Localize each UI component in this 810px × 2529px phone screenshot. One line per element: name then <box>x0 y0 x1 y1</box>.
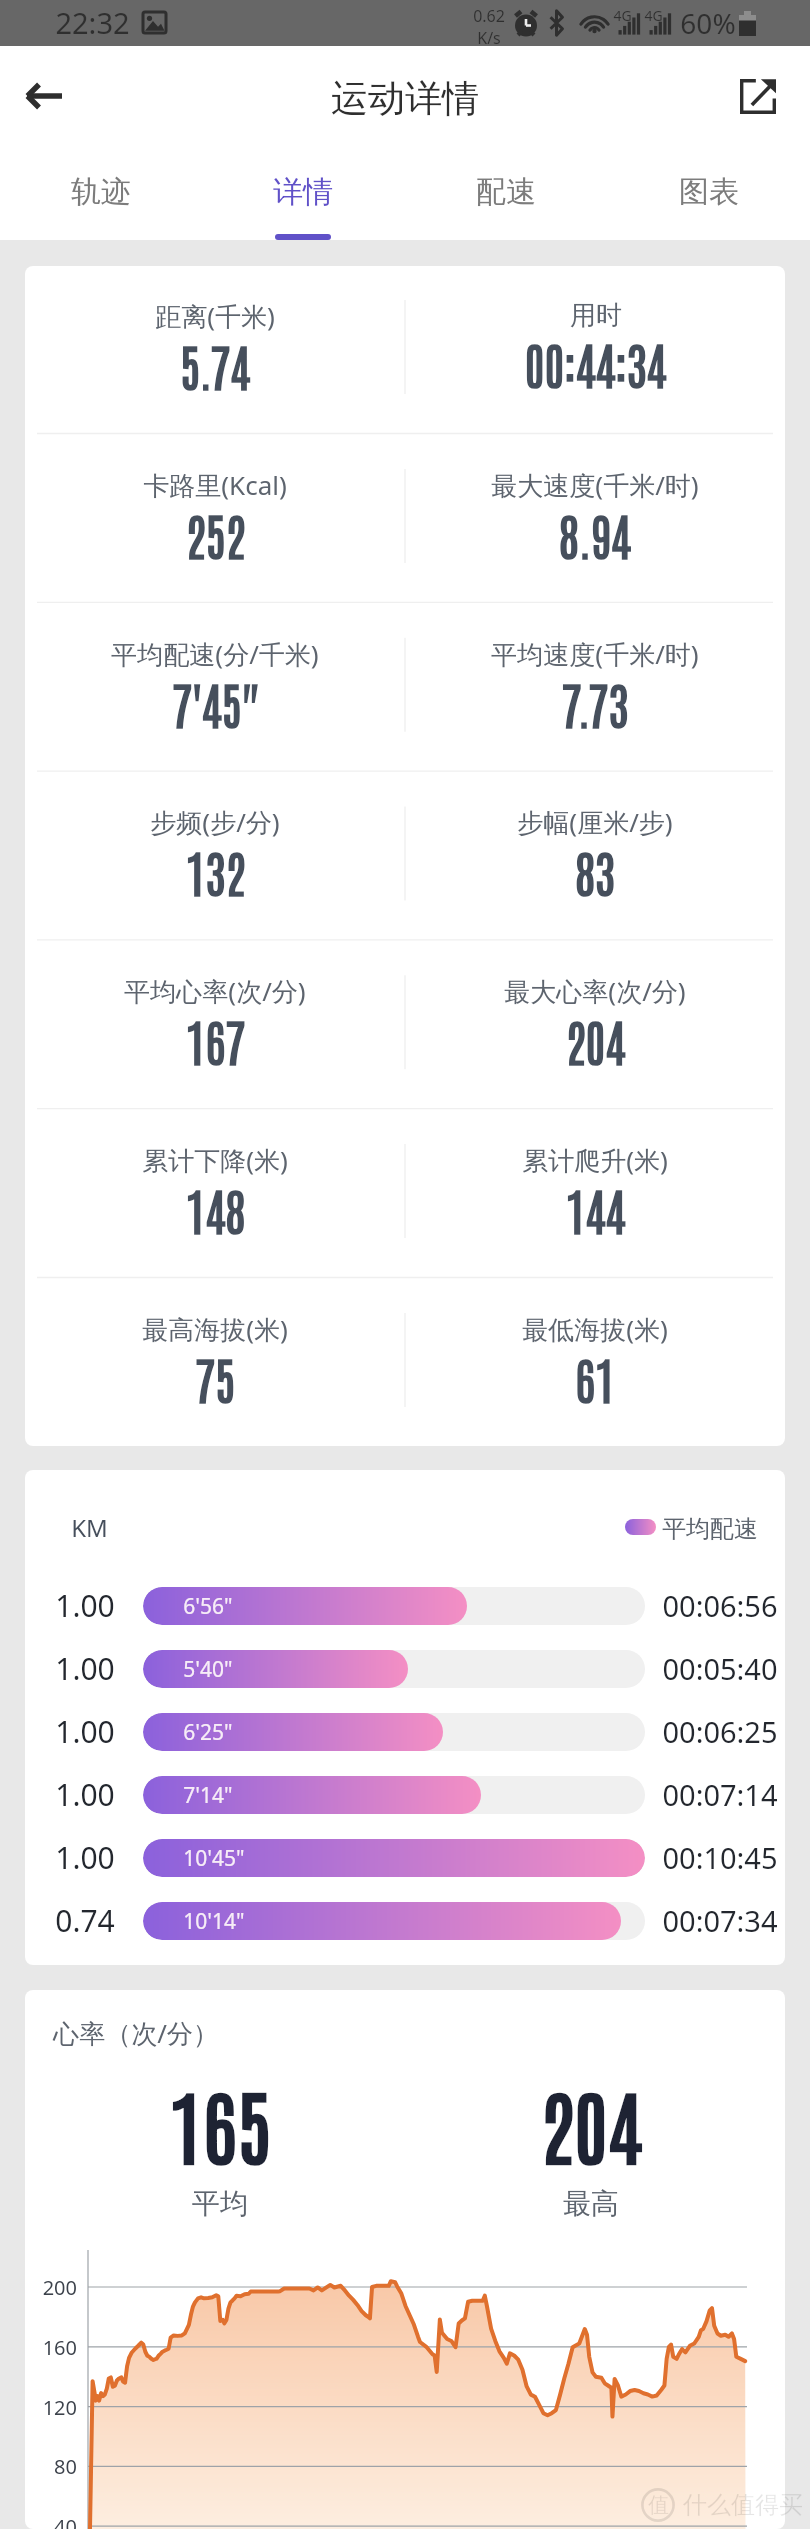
button[interactable]: 1.00 <box>25 1763 785 1826</box>
staticText: 平均配速(分/千米) <box>111 636 319 672</box>
staticText: 什么值得买 <box>683 2490 803 2520</box>
staticText: 详情 <box>273 173 333 211</box>
button[interactable]: 最大心率(次/分) <box>405 941 785 1110</box>
button[interactable]: 最大速度(千米/时) <box>405 435 785 604</box>
staticText: 最大速度(千米/时) <box>491 467 699 503</box>
button[interactable]: 步幅(厘米/步) <box>405 772 785 941</box>
staticText: 值 <box>648 2492 669 2518</box>
staticText: 7'14" <box>183 1781 233 1810</box>
button[interactable]: 最低海拔(米) <box>405 1279 785 1446</box>
button[interactable]: 平均配速(分/千米) <box>25 604 405 773</box>
button[interactable]: 轨迹 <box>0 146 202 240</box>
button[interactable]: 最高海拔(米) <box>25 1279 405 1446</box>
staticText: 最低海拔(米) <box>522 1311 668 1347</box>
staticText: 累计爬升(米) <box>522 1142 668 1178</box>
staticText: 步幅(厘米/步) <box>517 804 673 840</box>
button[interactable]: 用时 <box>405 266 785 435</box>
button[interactable]: 配速 <box>404 146 607 240</box>
button[interactable]: 1.00 <box>25 1826 785 1889</box>
staticText: 167 <box>186 1007 245 1072</box>
staticText: 0.74 <box>55 1900 115 1941</box>
staticText: 83 <box>575 838 615 903</box>
staticText: 1.00 <box>55 1648 115 1689</box>
staticText: 8.94 <box>559 501 631 566</box>
staticText: 160 <box>27 2334 77 2361</box>
staticText: 00:05:40 <box>662 1649 778 1688</box>
staticText: 心率（次/分） <box>53 2015 219 2051</box>
staticText: 120 <box>27 2394 77 2421</box>
staticText: 7.73 <box>562 670 628 735</box>
staticText: 144 <box>566 1176 625 1241</box>
staticText: 步频(步/分) <box>150 804 280 840</box>
staticText: 运动详情 <box>331 75 479 122</box>
staticText: K/s <box>477 27 501 49</box>
staticText: 252 <box>186 501 245 566</box>
button[interactable]: 1.00 <box>25 1637 785 1700</box>
staticText: 最高 <box>563 2186 619 2221</box>
staticText: 1.00 <box>55 1774 115 1815</box>
button[interactable]: Back <box>12 65 74 127</box>
staticText: KM <box>71 1511 108 1544</box>
staticText: 00:07:34 <box>662 1901 778 1940</box>
staticText: 5'40" <box>183 1655 233 1684</box>
staticText: 6'25" <box>183 1718 233 1747</box>
staticText: 1.00 <box>55 1585 115 1626</box>
staticText: 148 <box>186 1176 245 1241</box>
staticText: 61 <box>575 1345 615 1410</box>
staticText: 用时 <box>570 299 622 332</box>
staticText: 轨迹 <box>71 173 131 211</box>
staticText: 132 <box>186 838 245 903</box>
staticText: 最高海拔(米) <box>142 1311 288 1347</box>
button[interactable]: 平均心率(次/分) <box>25 941 405 1110</box>
button[interactable]: 1.00 <box>25 1574 785 1637</box>
staticText: 10'14" <box>183 1907 245 1936</box>
staticText: 1.00 <box>55 1711 115 1752</box>
staticText: 60% <box>680 4 736 42</box>
button[interactable]: 图表 <box>607 146 810 240</box>
staticText: 6'56" <box>183 1592 233 1621</box>
staticText: 配速 <box>476 173 536 211</box>
button[interactable]: Share <box>730 68 786 124</box>
staticText: 22:32 <box>55 3 130 42</box>
staticText: 75 <box>195 1345 235 1410</box>
staticText: 4G <box>644 6 663 25</box>
staticText: 累计下降(米) <box>142 1142 288 1178</box>
staticText: 00:10:45 <box>662 1838 778 1877</box>
staticText: 0.62 <box>473 5 505 27</box>
staticText: 平均心率(次/分) <box>124 973 306 1009</box>
staticText: 平均速度(千米/时) <box>491 636 699 672</box>
staticText: 最大心率(次/分) <box>504 973 686 1009</box>
staticText: 80 <box>27 2453 77 2480</box>
button[interactable]: 累计下降(米) <box>25 1110 405 1279</box>
button[interactable]: 0.74 <box>25 1889 785 1952</box>
staticText: 10'45" <box>183 1844 245 1873</box>
button[interactable]: 详情 <box>202 146 404 240</box>
button[interactable]: 距离(千米) <box>25 266 405 435</box>
staticText: 距离(千米) <box>155 298 275 334</box>
staticText: 00:06:25 <box>662 1712 778 1751</box>
staticText: 165 <box>169 2070 271 2175</box>
staticText: 平均 <box>192 2186 248 2221</box>
staticText: 卡路里(Kcal) <box>143 467 287 503</box>
staticText: 平均配速 <box>662 1514 758 1544</box>
button[interactable]: 累计爬升(米) <box>405 1110 785 1279</box>
staticText: 1.00 <box>55 1837 115 1878</box>
staticText: 4G <box>613 6 632 25</box>
button[interactable]: 步频(步/分) <box>25 772 405 941</box>
staticText: 00:44:34 <box>525 330 666 395</box>
button[interactable]: 卡路里(Kcal) <box>25 435 405 604</box>
button[interactable]: 1.00 <box>25 1700 785 1763</box>
staticText: 图表 <box>679 173 739 211</box>
button[interactable]: 平均速度(千米/时) <box>405 604 785 773</box>
staticText: 00:07:14 <box>662 1775 778 1814</box>
staticText: 00:06:56 <box>662 1586 778 1625</box>
staticText: 204 <box>566 1007 625 1072</box>
staticText: 7'45" <box>172 670 259 735</box>
staticText: 204 <box>540 2070 642 2175</box>
staticText: 5.74 <box>180 332 250 397</box>
staticText: 200 <box>27 2274 77 2301</box>
staticText: 40 <box>27 2513 77 2529</box>
